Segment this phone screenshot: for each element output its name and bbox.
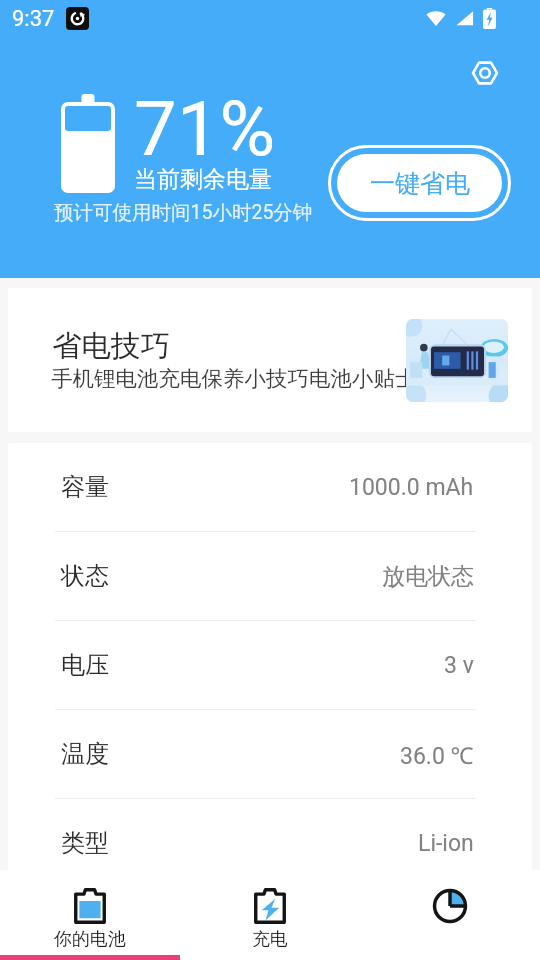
staticText: 放电状态 bbox=[382, 562, 474, 591]
staticText: 你的电池 bbox=[54, 928, 126, 951]
button[interactable]: 省电技巧 bbox=[8, 288, 532, 432]
staticText: 类型 bbox=[61, 828, 109, 858]
staticText: 充电 bbox=[252, 928, 288, 951]
staticText: 容量 bbox=[61, 472, 109, 502]
staticText: 当前剩余电量 bbox=[134, 165, 272, 194]
button[interactable]: 状态 bbox=[8, 532, 532, 621]
button[interactable]: 一键省电 bbox=[328, 145, 511, 221]
staticText: 预计可使用时间15小时25分钟 bbox=[54, 200, 313, 225]
staticText: 36.0 ℃ bbox=[400, 739, 474, 770]
button[interactable]: 类型 bbox=[8, 799, 532, 887]
staticText: 71% bbox=[134, 84, 276, 173]
staticText: 省电技巧 bbox=[52, 328, 170, 365]
staticText: Li-ion bbox=[418, 830, 474, 857]
staticText: 1000.0 mAh bbox=[349, 474, 474, 501]
staticText: 温度 bbox=[61, 739, 109, 769]
staticText: 电压 bbox=[61, 650, 109, 680]
button[interactable]: Settings bbox=[469, 57, 501, 89]
button[interactable]: 温度 bbox=[8, 710, 532, 799]
staticText: 3 v bbox=[444, 652, 474, 679]
button[interactable]: 电压 bbox=[8, 621, 532, 710]
button[interactable]: 容量 bbox=[8, 443, 532, 532]
staticText: 手机锂电池充电保养小技巧电池小贴士 bbox=[51, 365, 417, 392]
staticText: 一键省电 bbox=[370, 168, 470, 199]
button[interactable]: Statistics bbox=[360, 870, 540, 960]
button[interactable]: Your battery bbox=[0, 870, 180, 960]
staticText: 状态 bbox=[61, 561, 109, 591]
button[interactable]: Charging bbox=[180, 870, 360, 960]
staticText: 9:37 bbox=[12, 6, 55, 32]
